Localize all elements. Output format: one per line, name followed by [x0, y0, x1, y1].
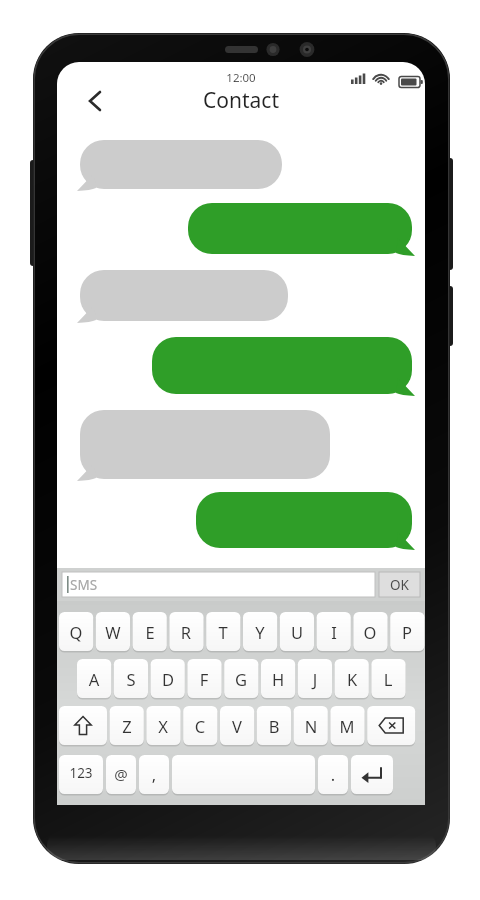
- button[interactable]: V: [220, 706, 254, 745]
- button[interactable]: 123: [59, 755, 103, 794]
- button[interactable]: R: [169, 612, 203, 651]
- staticText: N: [294, 715, 328, 737]
- button[interactable]: [152, 337, 412, 394]
- staticText: V: [220, 715, 254, 737]
- staticText: E: [133, 621, 167, 643]
- staticText: W: [96, 621, 130, 643]
- button[interactable]: ,: [139, 755, 169, 794]
- button[interactable]: H: [261, 659, 295, 698]
- button[interactable]: Q: [59, 612, 93, 651]
- staticText: 12:00: [205, 70, 277, 86]
- staticText: C: [183, 715, 217, 737]
- staticText: H: [261, 668, 295, 690]
- button[interactable]: Z: [110, 706, 144, 745]
- button[interactable]: Space: [172, 755, 315, 794]
- button[interactable]: Back: [74, 82, 114, 120]
- staticText: U: [280, 621, 314, 643]
- staticText: Q: [59, 621, 93, 643]
- button[interactable]: [379, 572, 420, 597]
- staticText: Y: [243, 621, 277, 643]
- staticText: D: [151, 668, 185, 690]
- button[interactable]: N: [294, 706, 328, 745]
- button[interactable]: C: [183, 706, 217, 745]
- button[interactable]: Shift: [59, 706, 107, 745]
- button[interactable]: [188, 203, 412, 254]
- staticText: 123: [59, 764, 103, 782]
- button[interactable]: Enter: [351, 755, 393, 794]
- button[interactable]: G: [224, 659, 258, 698]
- staticText: ,: [139, 763, 169, 785]
- button[interactable]: [80, 410, 330, 479]
- button[interactable]: U: [280, 612, 314, 651]
- button[interactable]: D: [151, 659, 185, 698]
- button[interactable]: F: [187, 659, 221, 698]
- button[interactable]: L: [371, 659, 405, 698]
- staticText: R: [169, 621, 203, 643]
- button[interactable]: [80, 140, 282, 189]
- staticText: Z: [110, 715, 144, 737]
- button[interactable]: A: [77, 659, 111, 698]
- staticText: B: [257, 715, 291, 737]
- staticText: S: [114, 668, 148, 690]
- button[interactable]: Y: [243, 612, 277, 651]
- staticText: T: [206, 621, 240, 643]
- button[interactable]: J: [298, 659, 332, 698]
- button[interactable]: K: [335, 659, 369, 698]
- button[interactable]: [196, 492, 412, 548]
- button[interactable]: S: [114, 659, 148, 698]
- button[interactable]: .: [318, 755, 348, 794]
- staticText: M: [330, 715, 364, 737]
- staticText: SMS: [70, 576, 98, 594]
- staticText: A: [77, 668, 111, 690]
- button[interactable]: SMS message input: [62, 572, 375, 597]
- button[interactable]: M: [330, 706, 364, 745]
- button[interactable]: @: [106, 755, 136, 794]
- staticText: @: [106, 764, 136, 784]
- staticText: Contact: [161, 86, 321, 115]
- staticText: J: [298, 668, 332, 690]
- button[interactable]: I: [317, 612, 351, 651]
- staticText: X: [146, 715, 180, 737]
- button[interactable]: O: [353, 612, 387, 651]
- button[interactable]: X: [146, 706, 180, 745]
- staticText: O: [353, 621, 387, 643]
- button[interactable]: E: [133, 612, 167, 651]
- staticText: K: [335, 668, 369, 690]
- button[interactable]: Backspace: [367, 706, 415, 745]
- staticText: F: [187, 668, 221, 690]
- staticText: P: [390, 621, 424, 643]
- button[interactable]: [80, 270, 288, 321]
- staticText: I: [317, 621, 351, 643]
- staticText: G: [224, 668, 258, 690]
- button[interactable]: B: [257, 706, 291, 745]
- staticText: L: [371, 668, 405, 690]
- staticText: .: [318, 763, 348, 785]
- button[interactable]: P: [390, 612, 424, 651]
- button[interactable]: W: [96, 612, 130, 651]
- button[interactable]: T: [206, 612, 240, 651]
- staticText: OK: [379, 576, 420, 594]
